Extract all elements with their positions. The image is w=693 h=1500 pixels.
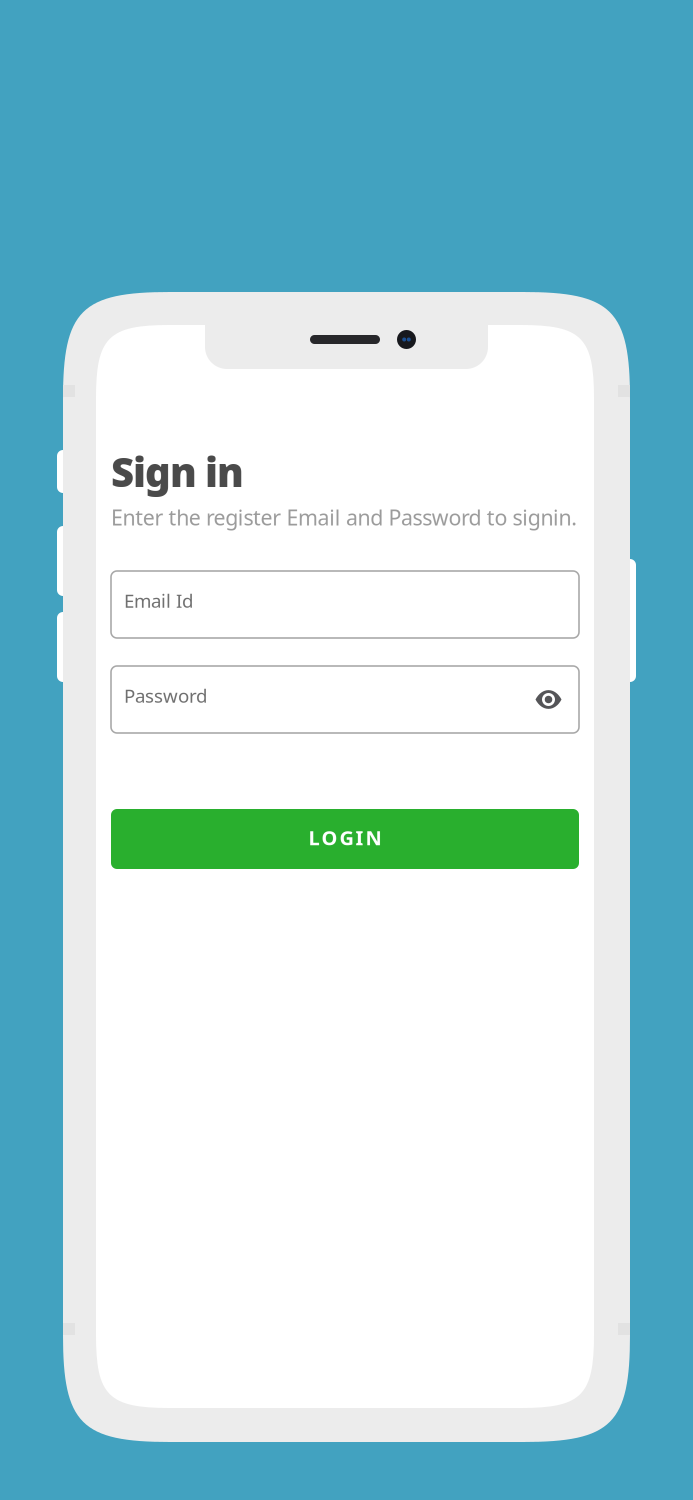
button[interactable]: LOGIN: [111, 809, 579, 869]
staticText: Password: [124, 683, 207, 708]
staticText: LOGIN: [308, 824, 381, 851]
staticText: Sign in: [111, 445, 244, 498]
button[interactable]: Show password: [523, 690, 566, 708]
staticText: Email Id: [124, 588, 193, 613]
button[interactable]: Password: [111, 666, 579, 733]
staticText: Enter the register Email and Password to…: [111, 503, 577, 531]
button[interactable]: Email Id: [111, 571, 579, 638]
